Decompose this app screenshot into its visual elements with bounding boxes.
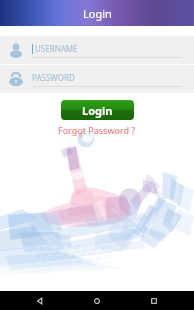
button[interactable]: USERNAME: [0, 36, 194, 64]
button[interactable]: Forgot Password ?: [58, 124, 136, 136]
button[interactable]: Back: [23, 291, 57, 310]
button[interactable]: PASSWORD: [0, 65, 194, 93]
staticText: Forgot Password ?: [58, 124, 136, 136]
staticText: USERNAME: [35, 43, 78, 54]
staticText: Login: [82, 103, 113, 118]
staticText: Login: [83, 6, 112, 21]
button[interactable]: Home: [80, 291, 114, 310]
staticText: PASSWORD: [32, 72, 75, 83]
button[interactable]: Recents: [137, 291, 171, 310]
button[interactable]: Login: [61, 100, 134, 120]
